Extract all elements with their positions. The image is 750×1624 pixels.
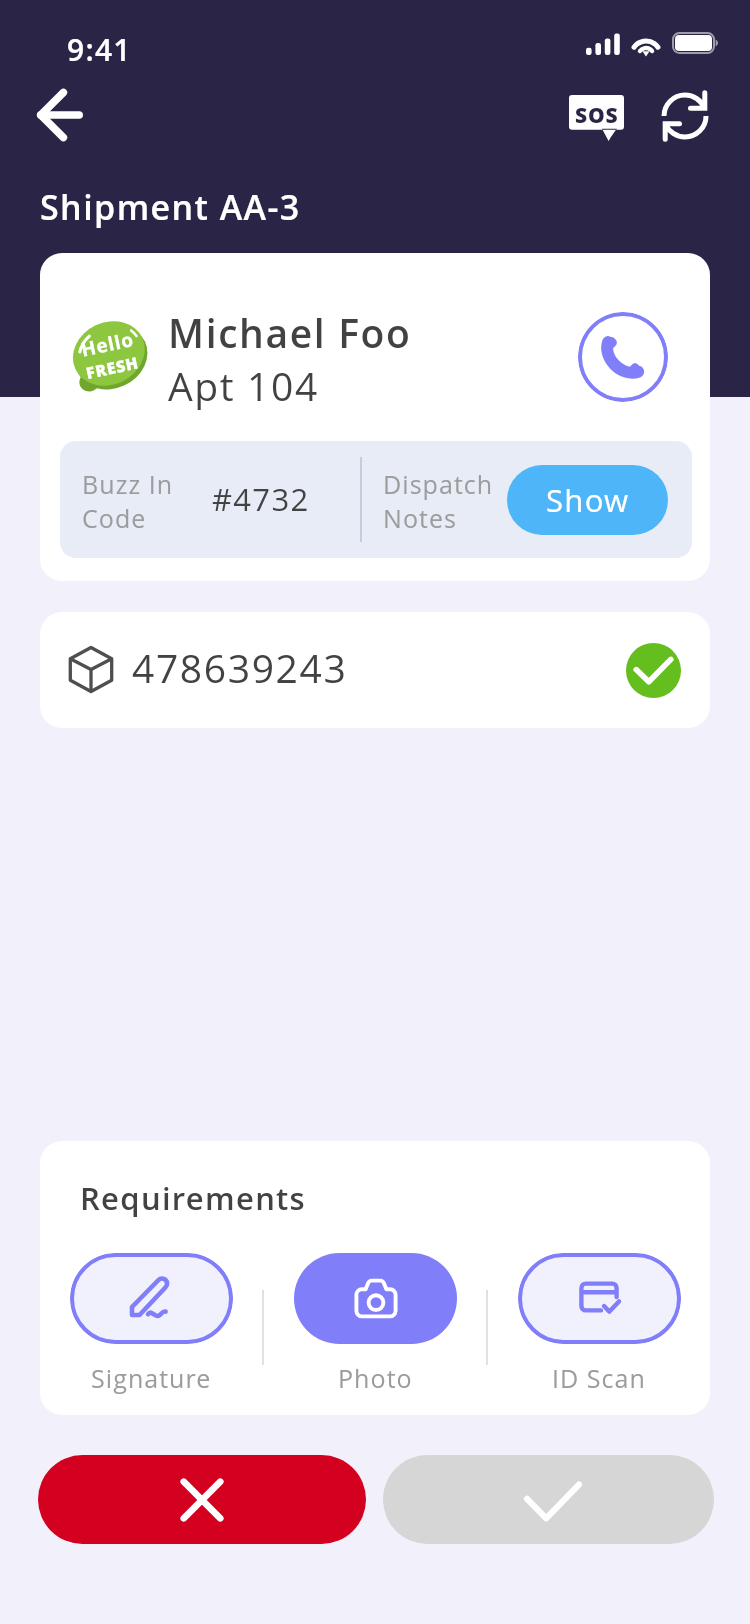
staticText: Photo — [338, 1361, 413, 1395]
button[interactable]: Confirm delivery — [383, 1455, 714, 1544]
button[interactable]: Show — [507, 465, 668, 535]
button[interactable]: Photo — [264, 1253, 486, 1395]
staticText: Hello — [79, 326, 137, 363]
staticText: Requirements — [80, 1177, 306, 1219]
staticText: Shipment AA-3 — [40, 184, 301, 230]
staticText: Signature — [91, 1361, 212, 1395]
staticText: Buzz In — [82, 467, 174, 501]
button[interactable]: Refresh — [652, 82, 718, 150]
staticText: Code — [82, 501, 147, 535]
staticText: 478639243 — [132, 641, 348, 694]
staticText: 9:41 — [67, 29, 132, 70]
other: Scanned — [626, 643, 681, 698]
button[interactable]: SOS emergency — [557, 82, 637, 150]
staticText: #4732 — [212, 478, 310, 520]
staticText: Notes — [383, 501, 457, 535]
button[interactable]: Back — [26, 81, 94, 149]
staticText: ID Scan — [552, 1361, 646, 1395]
button[interactable]: 478639243 — [40, 612, 710, 728]
button[interactable]: Signature — [40, 1253, 262, 1395]
staticText: Apt 104 — [168, 359, 319, 412]
button[interactable]: ID Scan — [488, 1253, 710, 1395]
staticText: Dispatch — [383, 467, 494, 501]
button[interactable]: Call customer — [578, 312, 668, 402]
staticText: FRESH — [84, 351, 141, 384]
staticText: Michael Foo — [168, 306, 412, 359]
staticText: Show — [546, 479, 630, 521]
staticText: SOS — [575, 101, 619, 130]
button[interactable]: Decline delivery — [38, 1455, 366, 1544]
